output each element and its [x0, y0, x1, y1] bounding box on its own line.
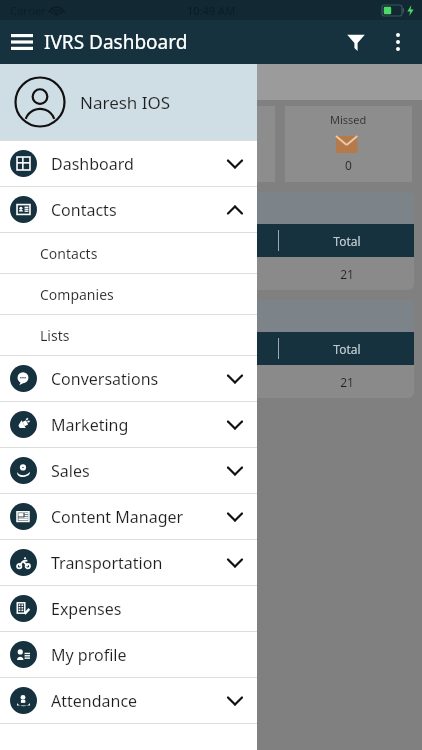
button[interactable]: Contacts: [0, 187, 257, 232]
staticText: Total: [333, 341, 361, 357]
button[interactable]: Conversations: [0, 356, 257, 401]
staticText: Transportation: [51, 552, 227, 574]
staticText: 0: [208, 266, 215, 282]
staticText: Companies: [40, 285, 114, 304]
button[interactable]: Naresh IOS: [0, 64, 257, 140]
button[interactable]: Marketing: [0, 402, 257, 447]
staticText: Total: [333, 233, 361, 249]
button[interactable]: Content Manager: [0, 494, 257, 539]
staticText: Call Data: [18, 199, 76, 217]
staticText: 21: [340, 374, 354, 390]
button[interactable]: Sales: [0, 448, 257, 493]
staticText: Missed: [330, 112, 367, 127]
staticText: Lists: [40, 326, 70, 345]
staticText: Welcome Naresh IOS: [14, 72, 163, 92]
button[interactable]: Dashboard: [0, 141, 257, 186]
staticText: Conversations: [51, 368, 227, 390]
staticText: SMS Data: [18, 307, 79, 325]
staticText: 21: [340, 266, 354, 282]
staticText: Contacts: [40, 244, 98, 263]
staticText: My profile: [51, 644, 243, 666]
staticText: IVRS Dashboard: [44, 29, 188, 55]
button[interactable]: More options: [378, 22, 418, 62]
button[interactable]: My profile: [0, 632, 257, 677]
button[interactable]: Lists: [0, 315, 257, 355]
staticText: Attendance: [51, 690, 227, 712]
staticText: 0: [345, 157, 352, 173]
staticText: Naresh IOS: [80, 91, 171, 114]
staticText: Answered: [48, 112, 100, 127]
button[interactable]: Attendance: [0, 678, 257, 723]
staticText: Incoming: [49, 266, 103, 282]
staticText: Incoming: [49, 374, 103, 390]
staticText: Answered: [183, 341, 239, 357]
staticText: Expenses: [51, 598, 243, 620]
staticText: Dashboard: [51, 153, 227, 175]
button[interactable]: Transportation: [0, 540, 257, 585]
staticText: Contacts: [51, 199, 227, 221]
staticText: Content Manager: [51, 506, 227, 528]
staticText: 10:49 AM: [187, 3, 236, 18]
button[interactable]: Open navigation drawer: [0, 20, 44, 64]
staticText: Call Type: [50, 341, 101, 357]
staticText: Sales: [51, 460, 227, 482]
button[interactable]: Expenses: [0, 586, 257, 631]
button[interactable]: Companies: [0, 274, 257, 314]
button[interactable]: Filter: [334, 20, 378, 64]
staticText: Marketing: [51, 414, 227, 436]
staticText: 0: [71, 157, 78, 173]
button[interactable]: Contacts: [0, 233, 257, 273]
staticText: Carrier: [10, 3, 46, 18]
